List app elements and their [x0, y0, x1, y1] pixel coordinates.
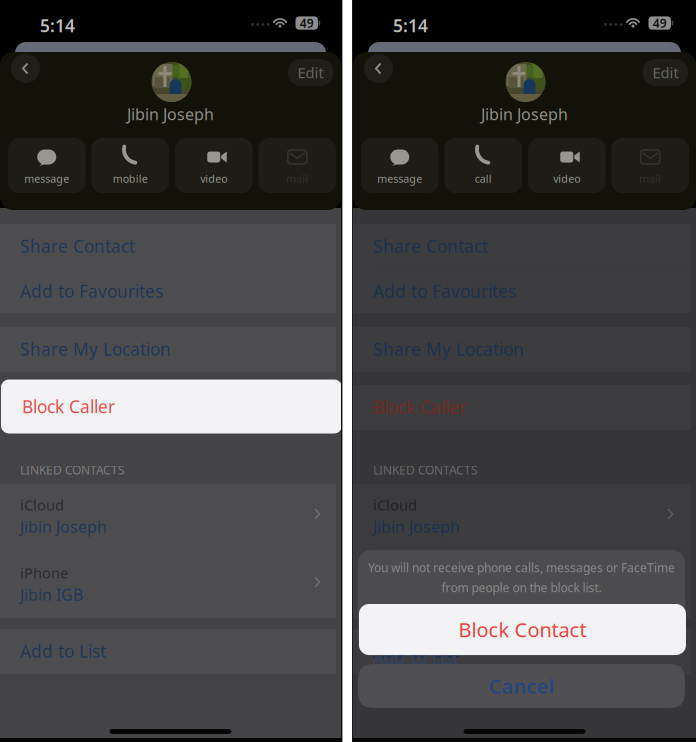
- staticText: iPhone: [373, 563, 421, 582]
- staticText: video: [200, 171, 227, 186]
- staticText: Jibin IGB: [20, 584, 83, 605]
- button[interactable]: Share Contact: [353, 224, 691, 268]
- staticText: Add to Favourites: [373, 279, 516, 302]
- button[interactable]: video: [528, 138, 605, 193]
- staticText: message: [24, 171, 69, 186]
- staticText: LINKED CONTACTS: [373, 462, 478, 478]
- staticText: mobile: [113, 171, 148, 186]
- staticText: Block Caller: [373, 395, 466, 418]
- button[interactable]: Add to Favourites: [353, 269, 691, 313]
- staticText: Add to List: [373, 646, 459, 669]
- staticText: You will not receive phone calls, messag…: [368, 559, 675, 575]
- button[interactable]: Block Contact: [359, 604, 686, 655]
- staticText: Jibin Joseph: [373, 516, 460, 537]
- staticText: Block Caller: [20, 395, 113, 418]
- staticText: Jibin Joseph: [481, 103, 568, 125]
- staticText: Jibin Joseph: [20, 516, 107, 537]
- button[interactable]: message: [8, 138, 85, 193]
- staticText: Jibin Joseph: [127, 103, 214, 125]
- staticText: mail: [286, 171, 308, 186]
- button[interactable]: Back: [364, 54, 393, 83]
- staticText: Cancel: [488, 673, 554, 699]
- staticText: LINKED CONTACTS: [20, 462, 125, 478]
- button[interactable]: iCloud: [353, 484, 691, 546]
- button[interactable]: Add to List: [0, 629, 336, 673]
- button[interactable]: Block Caller: [353, 385, 691, 429]
- staticText: iPhone: [20, 563, 68, 582]
- button[interactable]: iCloud: [0, 484, 336, 546]
- staticText: Share Contact: [373, 234, 488, 257]
- button[interactable]: Back: [11, 54, 40, 83]
- button[interactable]: mail: [611, 138, 689, 193]
- staticText: Share My Location: [20, 337, 171, 360]
- staticText: Block Caller: [22, 395, 115, 418]
- button[interactable]: mail: [258, 138, 336, 193]
- staticText: Block Contact: [458, 616, 586, 643]
- button[interactable]: Add to Favourites: [0, 269, 336, 313]
- staticText: iCloud: [373, 495, 417, 514]
- button[interactable]: Cancel: [358, 664, 685, 708]
- button[interactable]: Block Caller: [1, 379, 342, 433]
- button[interactable]: video: [175, 138, 252, 193]
- staticText: Edit: [652, 63, 678, 82]
- staticText: message: [377, 171, 422, 186]
- button[interactable]: Share My Location: [353, 327, 691, 371]
- staticText: call: [475, 171, 492, 186]
- staticText: mail: [639, 171, 661, 186]
- staticText: Add to List: [373, 639, 459, 662]
- staticText: 49: [300, 15, 314, 31]
- staticText: Edit: [297, 63, 323, 82]
- button[interactable]: Edit: [287, 59, 333, 86]
- staticText: 5:14: [393, 14, 428, 37]
- button[interactable]: Share Contact: [0, 224, 336, 268]
- staticText: Jibin IGB: [373, 584, 436, 605]
- button[interactable]: call: [444, 138, 522, 193]
- staticText: 5:14: [40, 14, 75, 37]
- staticText: Share Contact: [20, 234, 135, 257]
- button[interactable]: Block Caller: [0, 385, 336, 429]
- staticText: Add to Favourites: [20, 279, 163, 302]
- staticText: Share My Location: [373, 337, 524, 360]
- staticText: iCloud: [20, 495, 64, 514]
- button[interactable]: iPhone: [353, 552, 691, 614]
- staticText: video: [553, 171, 580, 186]
- button[interactable]: Add to List: [353, 629, 691, 673]
- button[interactable]: Edit: [642, 59, 688, 86]
- button[interactable]: Share My Location: [0, 327, 336, 371]
- staticText: 49: [653, 15, 667, 31]
- button[interactable]: message: [361, 138, 438, 193]
- button[interactable]: mobile: [91, 138, 169, 193]
- button[interactable]: iPhone: [0, 552, 336, 614]
- staticText: Add to List: [20, 639, 106, 662]
- staticText: from people on the block list.: [441, 579, 601, 595]
